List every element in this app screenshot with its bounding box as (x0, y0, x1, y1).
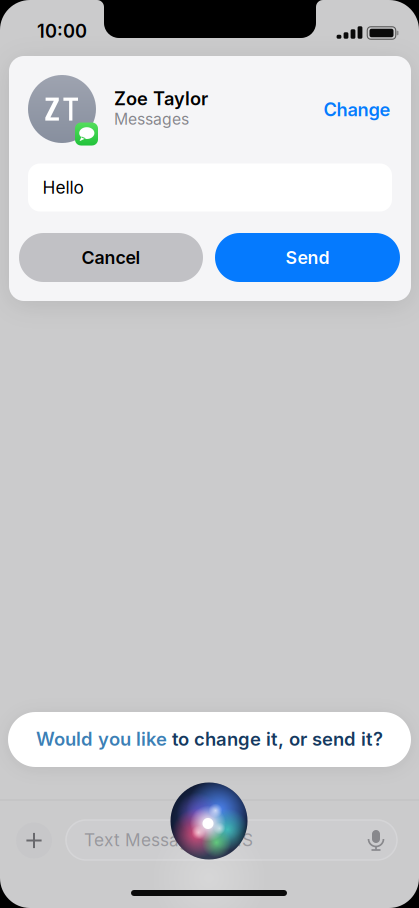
staticText: Text Message · SMS (84, 830, 253, 850)
staticText: 10:00 (37, 20, 87, 42)
staticText: Change (323, 98, 390, 121)
staticText: Hello (42, 177, 83, 198)
staticText: Zoe Taylor (114, 87, 208, 110)
button[interactable]: Cancel (19, 233, 203, 282)
button[interactable]: Siri (170, 782, 247, 859)
button[interactable]: Dictate (366, 829, 386, 851)
button[interactable]: Change (323, 98, 390, 121)
staticText: Cancel (81, 247, 140, 268)
staticText: Would you like (36, 728, 172, 750)
staticText: to change it, or send it? (172, 728, 383, 750)
staticText: Messages (114, 109, 189, 128)
button[interactable]: Add attachment (16, 822, 52, 858)
button[interactable]: Send (215, 233, 400, 282)
staticText: Send (285, 247, 329, 268)
